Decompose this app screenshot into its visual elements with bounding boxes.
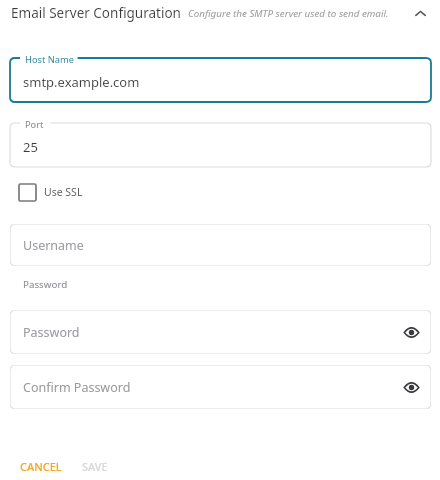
staticText: Password bbox=[23, 278, 68, 291]
button[interactable]: Show password bbox=[398, 319, 424, 345]
button[interactable]: Username bbox=[10, 224, 431, 266]
button[interactable]: CANCEL bbox=[10, 453, 72, 479]
staticText: Use SSL bbox=[44, 185, 83, 199]
button[interactable]: Collapse section bbox=[406, 0, 434, 26]
button[interactable]: Show confirm password bbox=[398, 374, 424, 400]
staticText: SAVE bbox=[82, 459, 108, 474]
button[interactable]: Use SSL bbox=[14, 180, 88, 204]
button[interactable]: Host Name bbox=[10, 58, 431, 102]
button[interactable]: Confirm Password bbox=[10, 365, 431, 409]
button[interactable]: Port bbox=[10, 123, 431, 167]
staticText: CANCEL bbox=[20, 459, 62, 474]
button[interactable]: SAVE bbox=[72, 453, 118, 479]
staticText: Confirm Password bbox=[23, 379, 131, 396]
staticText: 25 bbox=[23, 138, 38, 156]
staticText: Password bbox=[23, 324, 80, 341]
staticText: Host Name bbox=[25, 53, 74, 66]
staticText: Username bbox=[23, 237, 84, 254]
staticText: Configure the SMTP server used to send e… bbox=[188, 7, 389, 20]
staticText: Email Server Configuration bbox=[11, 4, 181, 22]
button[interactable]: Password bbox=[10, 310, 431, 354]
staticText: Port bbox=[25, 118, 44, 131]
staticText: smtp.example.com bbox=[23, 73, 140, 91]
